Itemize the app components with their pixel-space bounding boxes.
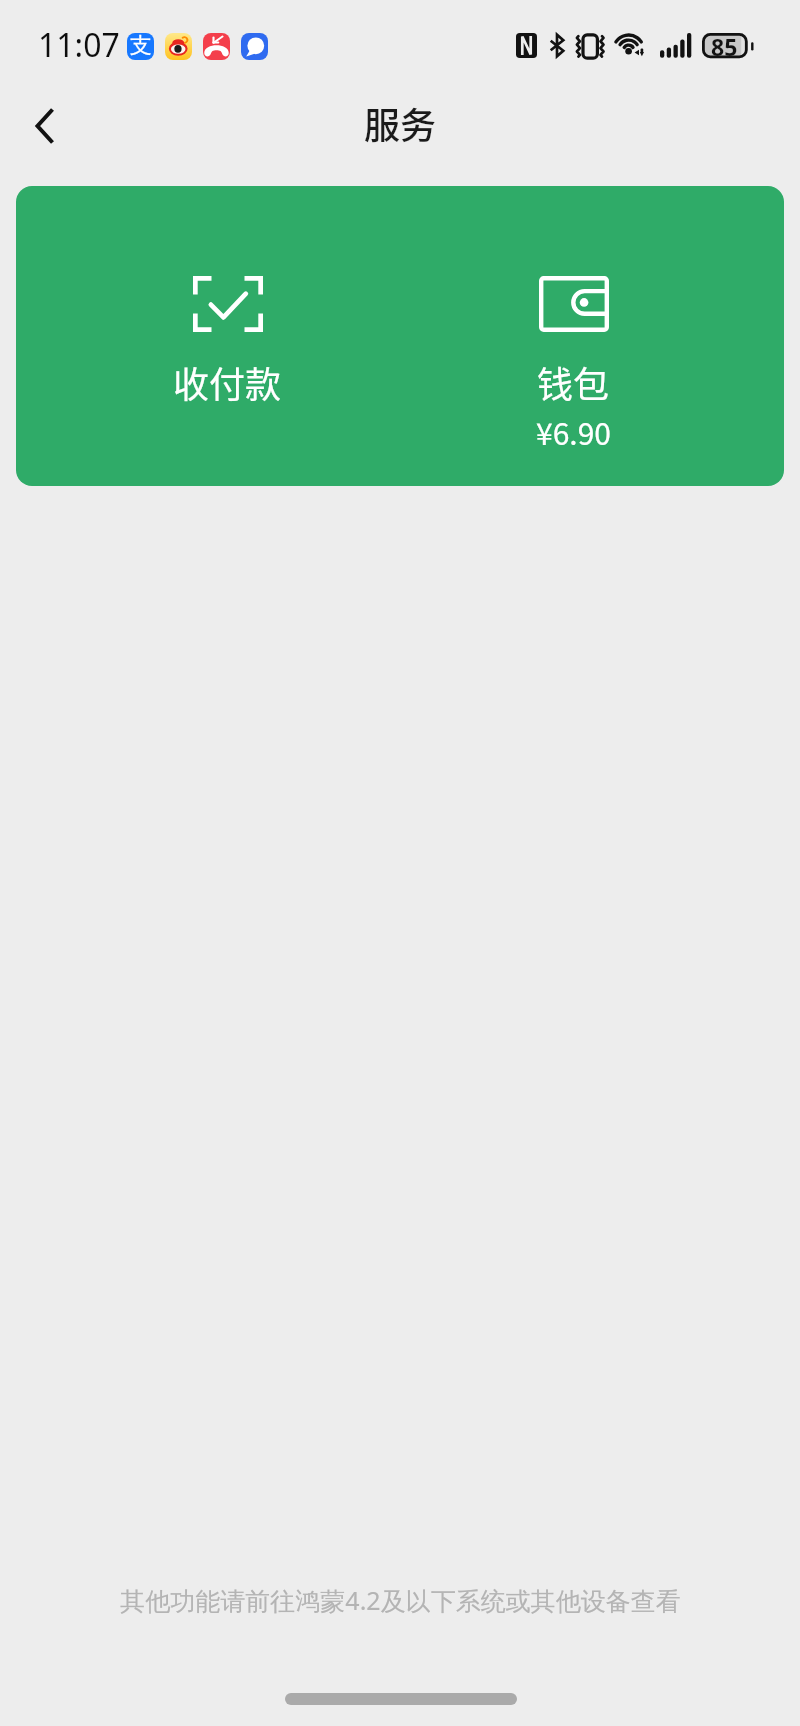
staticText: ¥6.90 [536,410,611,453]
staticText: 85 [711,31,738,57]
staticText: 钱包 [537,356,610,408]
staticText: 服务 [364,97,437,149]
button[interactable]: 钱包 [400,186,784,486]
staticText: 其他功能请前往鸿蒙4.2及以下系统或其他设备查看 [120,1583,681,1617]
staticText: 支 [130,33,152,59]
staticText: 收付款 [173,356,282,408]
staticText: 11:07 [38,23,120,67]
button[interactable]: 收付款 [16,186,400,486]
button[interactable]: Back [11,90,79,162]
